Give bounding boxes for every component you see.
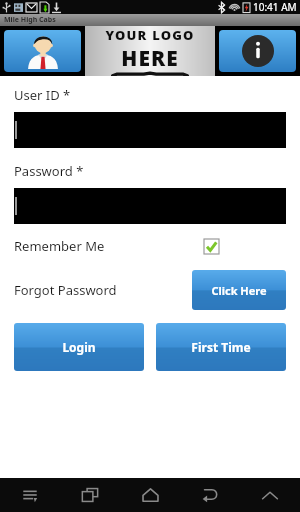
button[interactable]: Login: [14, 323, 144, 371]
staticText: Mile High Cabs: [4, 15, 56, 25]
button[interactable]: Remember Me checkbox: [198, 233, 224, 259]
button[interactable]: Account: [4, 30, 81, 72]
button[interactable]: Home: [120, 478, 180, 512]
button[interactable]: Information: [219, 30, 296, 72]
button[interactable]: Click Here: [192, 270, 286, 310]
staticText: Password *: [14, 162, 84, 180]
button[interactable]: YOUR LOGO: [85, 26, 215, 76]
staticText: User ID *: [14, 86, 71, 104]
staticText: Remember Me: [14, 237, 105, 255]
button[interactable]: User ID: [14, 112, 286, 148]
button[interactable]: Back: [180, 478, 240, 512]
button[interactable]: Menu: [0, 478, 60, 512]
button[interactable]: Password: [14, 188, 286, 224]
staticText: HERE: [121, 44, 179, 73]
staticText: Click Here: [211, 283, 267, 298]
staticText: Forgot Password: [14, 281, 117, 299]
staticText: 10:41 AM: [253, 0, 297, 14]
button[interactable]: First Time: [156, 323, 286, 371]
staticText: YOUR LOGO: [105, 26, 195, 44]
staticText: First Time: [191, 339, 251, 355]
staticText: Login: [62, 339, 96, 355]
button[interactable]: Expand: [240, 478, 300, 512]
button[interactable]: Recent apps: [60, 478, 120, 512]
